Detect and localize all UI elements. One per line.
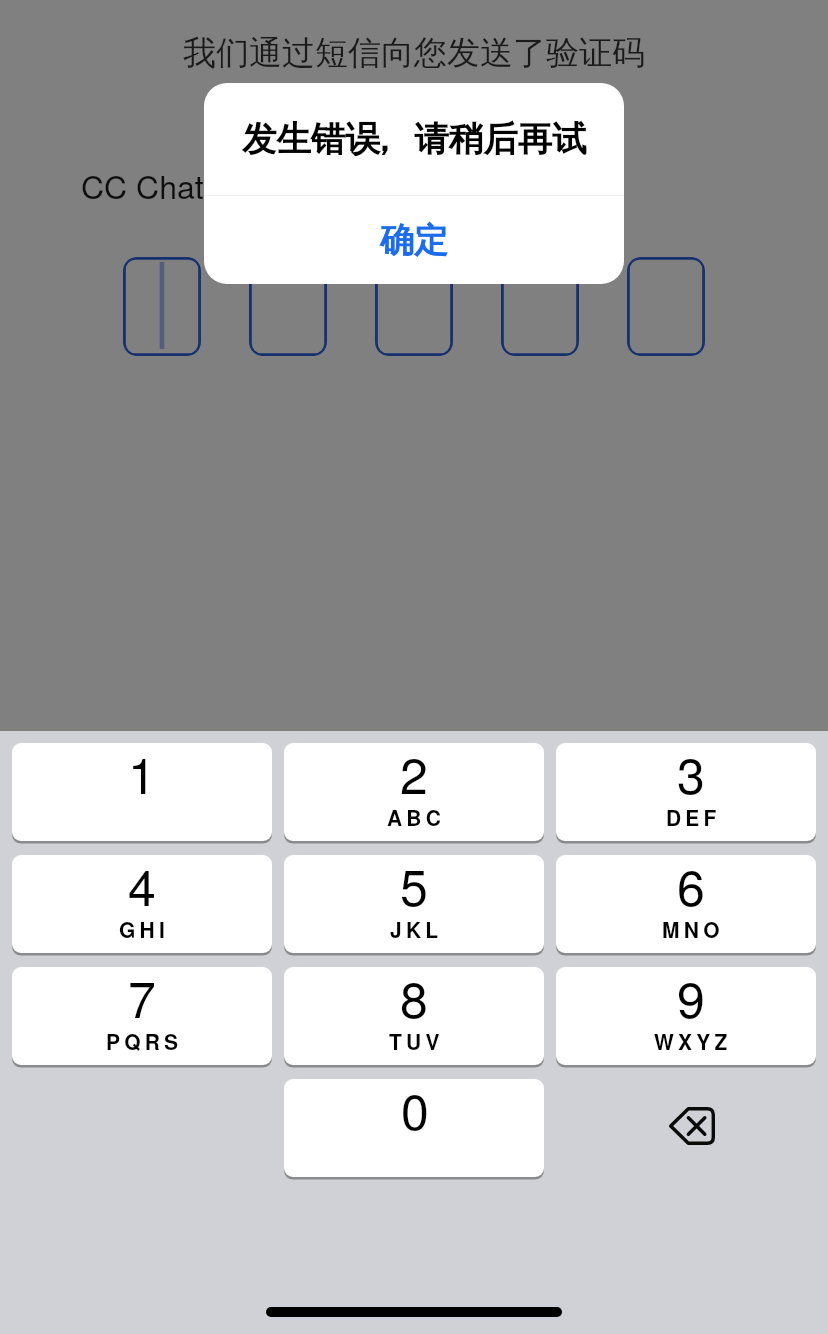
button[interactable]: 1	[12, 743, 272, 841]
staticText: 我们通过短信向您发送了验证码	[183, 32, 645, 74]
staticText: 5	[400, 849, 428, 921]
button[interactable]	[375, 257, 453, 356]
staticText: 1	[128, 737, 156, 809]
staticText: 3	[677, 737, 705, 809]
staticText: 6	[677, 849, 705, 921]
staticText: ，	[367, 118, 401, 161]
staticText: 0	[401, 1073, 429, 1145]
button[interactable]: 7	[12, 967, 272, 1065]
staticText: CC Chat	[81, 162, 204, 208]
staticText: 2	[400, 737, 428, 809]
staticText: 确定	[380, 219, 448, 262]
button[interactable]	[501, 257, 579, 356]
button[interactable]: 9	[556, 967, 816, 1065]
staticText: 7	[128, 961, 156, 1033]
staticText: 4	[128, 849, 156, 921]
button[interactable]: 4	[12, 855, 272, 953]
staticText: ABC	[387, 802, 446, 832]
button[interactable]	[627, 257, 705, 356]
button[interactable]: 2	[284, 743, 544, 841]
staticText: TUV	[389, 1026, 444, 1056]
staticText: DEF	[666, 802, 721, 832]
button[interactable]: 0	[284, 1079, 544, 1177]
staticText: JKL	[390, 914, 443, 944]
staticText: 8	[400, 961, 428, 1033]
staticText: WXYZ	[654, 1026, 732, 1056]
button[interactable]	[123, 257, 201, 356]
button[interactable]: 确定	[204, 196, 624, 284]
staticText: MNO	[662, 914, 724, 944]
button[interactable]	[249, 257, 327, 356]
staticText: 发生错误	[242, 118, 380, 161]
staticText: 请稍后再试	[414, 118, 587, 161]
button[interactable]: 6	[556, 855, 816, 953]
staticText: GHI	[119, 914, 169, 944]
staticText: PQRS	[106, 1026, 183, 1056]
button[interactable]: 3	[556, 743, 816, 841]
staticText: 9	[677, 961, 705, 1033]
button[interactable]: Delete	[555, 1079, 815, 1177]
button[interactable]: 5	[284, 855, 544, 953]
button[interactable]: 8	[284, 967, 544, 1065]
